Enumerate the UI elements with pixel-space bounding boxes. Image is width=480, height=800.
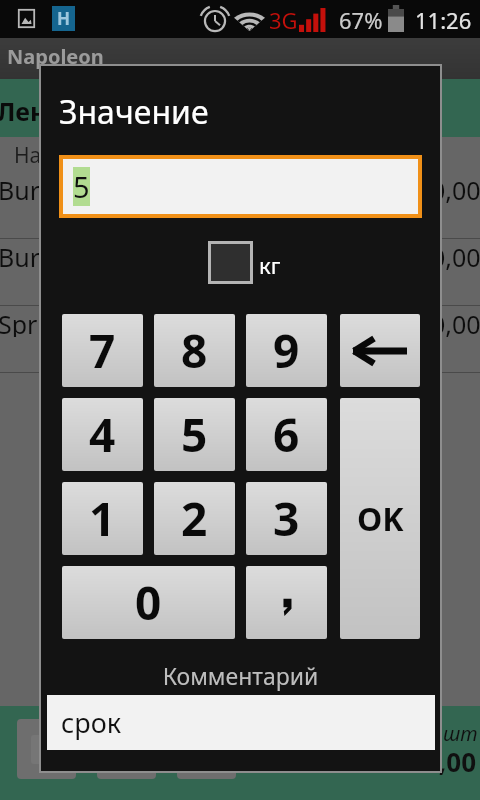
staticText: 11:26 bbox=[415, 5, 472, 35]
staticText: 5 bbox=[181, 403, 208, 466]
button[interactable]: Backspace bbox=[340, 314, 420, 387]
button[interactable]: 5 bbox=[63, 159, 418, 214]
staticText: шт bbox=[443, 720, 478, 747]
button[interactable]: 4 bbox=[62, 398, 143, 471]
staticText: 7 bbox=[89, 319, 116, 382]
button[interactable]: 0 bbox=[62, 566, 235, 639]
staticText: 1 bbox=[89, 487, 116, 550]
staticText: кг bbox=[259, 250, 281, 280]
staticText: Кол-во bbox=[247, 141, 316, 170]
staticText: OK bbox=[357, 497, 404, 541]
staticText: 1 bbox=[342, 307, 356, 337]
staticText: 3G bbox=[269, 5, 298, 35]
button[interactable]: OK bbox=[340, 398, 420, 639]
button[interactable]: 9 bbox=[246, 314, 327, 387]
button[interactable]: 2 bbox=[154, 482, 235, 555]
staticText: Значение bbox=[59, 90, 209, 134]
staticText: 8 bbox=[181, 319, 208, 382]
button[interactable]: срок bbox=[47, 695, 435, 750]
staticText: H bbox=[57, 7, 71, 30]
staticText: Burn, 1л bbox=[0, 240, 98, 270]
staticText: 4 bbox=[89, 403, 116, 466]
button[interactable]: 5 bbox=[154, 398, 235, 471]
button[interactable]: Action bbox=[177, 719, 236, 779]
staticText: 67% bbox=[339, 5, 383, 35]
button[interactable]: 3 bbox=[246, 482, 327, 555]
staticText: 0 bbox=[135, 571, 162, 634]
button[interactable]: 6 bbox=[246, 398, 327, 471]
staticText: 0,00 bbox=[431, 240, 480, 270]
staticText: Сумма bbox=[360, 141, 429, 170]
button[interactable]: 8 bbox=[154, 314, 235, 387]
staticText: 9 bbox=[273, 319, 300, 382]
staticText: Название bbox=[14, 141, 113, 170]
staticText: Лента bbox=[0, 94, 74, 128]
button[interactable]: Decimal comma bbox=[246, 566, 327, 639]
staticText: Burn, 1л bbox=[0, 173, 98, 203]
staticText: Sprite, 1л bbox=[0, 307, 110, 337]
button[interactable]: 1 bbox=[62, 482, 143, 555]
staticText: 5 bbox=[73, 167, 90, 206]
button[interactable]: Action bbox=[97, 719, 156, 779]
staticText: 0,00 bbox=[431, 173, 480, 203]
staticText: 0,00 bbox=[424, 744, 477, 779]
staticText: 0,00 bbox=[431, 307, 480, 337]
staticText: 3 bbox=[273, 487, 300, 550]
staticText: Napoleon bbox=[7, 43, 104, 70]
button[interactable]: Action bbox=[17, 719, 76, 779]
staticText: Комментарий bbox=[41, 660, 440, 691]
staticText: срок bbox=[61, 704, 122, 741]
staticText: 6 bbox=[273, 403, 300, 466]
staticText: 2 bbox=[181, 487, 208, 550]
button[interactable]: 7 bbox=[62, 314, 143, 387]
